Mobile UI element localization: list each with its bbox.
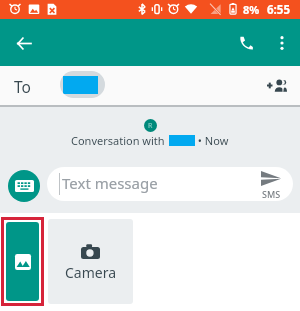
button[interactable]: Send SMS: [252, 167, 292, 201]
button[interactable]: Keyboard: [8, 170, 40, 202]
button[interactable]: Gallery: [6, 222, 39, 301]
staticText: Text message: [62, 173, 158, 193]
button[interactable]: Add people: [262, 71, 291, 100]
button[interactable]: [60, 71, 105, 98]
button[interactable]: Call: [229, 26, 263, 60]
staticText: SMS: [262, 188, 281, 200]
staticText: 6:55: [267, 2, 290, 18]
button[interactable]: Camera: [48, 219, 133, 304]
button[interactable]: Text message: [47, 167, 293, 201]
staticText: • Now: [195, 133, 229, 148]
staticText: Conversation with: [71, 133, 165, 148]
staticText: Camera: [65, 263, 117, 282]
staticText: 8%: [243, 2, 260, 17]
staticText: R: [148, 121, 153, 131]
button[interactable]: Back: [7, 26, 41, 60]
button[interactable]: More options: [267, 28, 297, 58]
staticText: To: [14, 76, 31, 97]
